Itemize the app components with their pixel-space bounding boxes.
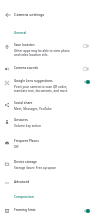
button[interactable] [0,39,97,55]
staticText: Frequent Places [14,139,39,143]
staticText: Point your camera to scan QR codes, tran… [14,85,70,93]
staticText: Social share [14,101,33,105]
staticText: Meet, Messages, YouTube [14,107,52,111]
button[interactable] [0,62,97,73]
button[interactable] [0,97,97,113]
button[interactable] [0,135,97,151]
button[interactable] [0,176,97,187]
staticText: Off [14,145,19,149]
staticText: Framing hints [14,208,36,212]
button[interactable] [0,156,97,172]
staticText: Google Lens suggestions [14,79,53,83]
button[interactable]: Toggle Google Lens suggestions [80,77,92,86]
staticText: Save location [14,43,35,47]
staticText: Other apps may be able to view photo and… [14,49,70,57]
button[interactable]: Toggle Save location [80,41,92,50]
staticText: Gestures [14,118,28,122]
button[interactable]: Toggle Camera sounds [80,64,92,73]
staticText: General [14,31,27,35]
staticText: Camera settings [14,12,45,17]
button[interactable] [0,204,97,215]
button[interactable]: Back [3,10,12,19]
button[interactable] [0,114,97,130]
button[interactable] [0,75,97,91]
staticText: Storage Saver: Free up space [14,166,56,170]
staticText: Device storage [14,160,37,164]
staticText: Advanced [14,180,30,184]
button[interactable]: Toggle Framing hints [80,206,92,215]
staticText: Camera sounds [14,66,39,70]
staticText: Composition [14,195,34,199]
staticText: Volume key action [14,124,41,128]
